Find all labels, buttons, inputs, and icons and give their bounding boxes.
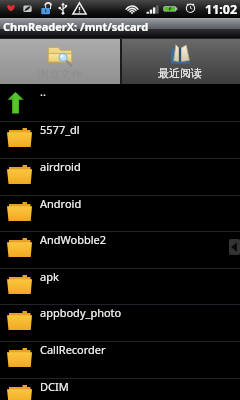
staticText: 5577_dl	[40, 122, 80, 137]
staticText: 11:02	[205, 1, 238, 18]
staticText: apk	[40, 269, 59, 284]
button[interactable]: apk	[0, 269, 240, 304]
button[interactable]: 浏览文件	[0, 38, 120, 84]
staticText: airdroid	[40, 159, 81, 174]
button[interactable]: 最近阅读	[120, 38, 240, 84]
staticText: DCIM	[40, 379, 69, 394]
button[interactable]: 5577_dl	[0, 122, 240, 158]
button[interactable]: airdroid	[0, 159, 240, 195]
button[interactable]: ..	[0, 84, 240, 121]
button[interactable]: DCIM	[0, 379, 240, 400]
staticText: 最近阅读	[158, 66, 202, 80]
button[interactable]: CallRecorder	[0, 342, 240, 378]
staticText: Android	[40, 196, 82, 211]
staticText: AndWobble2	[40, 232, 107, 247]
button[interactable]: Android	[0, 196, 240, 231]
staticText: appbody_photo	[40, 305, 122, 320]
staticText: CallRecorder	[40, 342, 106, 357]
staticText: ..	[40, 84, 46, 99]
staticText: ChmReaderX: /mnt/sdcard	[3, 19, 149, 34]
staticText: 浏览文件	[38, 67, 82, 81]
button[interactable]: appbody_photo	[0, 305, 240, 341]
button[interactable]: AndWobble2	[0, 232, 240, 268]
other: Scroll thumb	[229, 239, 240, 255]
